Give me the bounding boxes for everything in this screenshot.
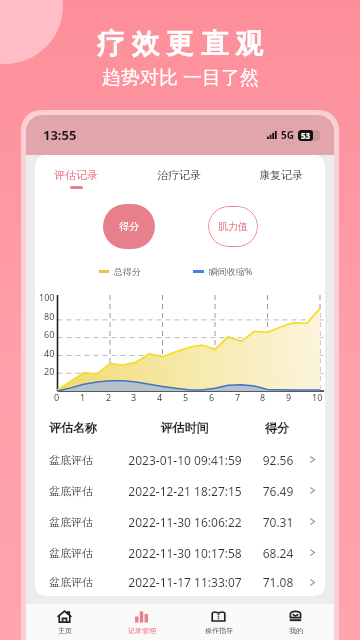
staticText: 2022-11-30 16:06:22 — [122, 514, 248, 530]
button[interactable]: 盆底评估 — [35, 568, 325, 596]
button[interactable]: 主页 — [26, 604, 103, 640]
button[interactable]: 肌力值 — [208, 206, 258, 247]
staticText: 2 — [106, 391, 112, 403]
staticText: 92.56 — [248, 452, 308, 468]
staticText: 盆底评估 — [49, 453, 122, 467]
staticText: 记录管理 — [128, 626, 156, 635]
staticText: 盆底评估 — [49, 484, 122, 498]
staticText: 主页 — [58, 626, 72, 635]
staticText: 5G — [281, 128, 294, 142]
staticText: 盆底评估 — [49, 546, 122, 560]
staticText: 8 — [260, 391, 266, 403]
staticText: 20 — [44, 365, 55, 377]
staticText: 2022-12-21 18:27:15 — [122, 483, 248, 499]
staticText: 治疗记录 — [157, 168, 201, 182]
staticText: 76.49 — [248, 483, 308, 499]
button[interactable]: 记录管理 — [103, 604, 180, 640]
staticText: 操作指导 — [205, 626, 233, 635]
staticText: 盆底评估 — [49, 515, 122, 529]
staticText: 4 — [157, 391, 163, 403]
staticText: 9 — [286, 391, 292, 403]
staticText: 我的 — [289, 626, 303, 635]
button[interactable]: 操作指导 — [180, 604, 257, 640]
staticText: 瞬间收缩% — [209, 265, 253, 277]
staticText: 6 — [209, 391, 215, 403]
staticText: 评估时间 — [122, 420, 247, 435]
button[interactable]: 盆底评估 — [35, 444, 325, 475]
staticText: 评估记录 — [54, 168, 98, 182]
staticText: 疗 效 更 直 观 — [97, 24, 264, 62]
staticText: 5 — [183, 391, 189, 403]
staticText: 2023-01-10 09:41:59 — [122, 452, 248, 468]
staticText: 13:55 — [43, 126, 77, 144]
button[interactable]: 我的 — [257, 604, 334, 640]
staticText: 80 — [44, 310, 55, 322]
button[interactable]: 盆底评估 — [35, 537, 325, 568]
staticText: 肌力值 — [218, 220, 248, 233]
staticText: 总得分 — [114, 266, 141, 277]
staticText: 趋势对比 一目了然 — [102, 64, 259, 90]
staticText: 70.31 — [248, 514, 308, 530]
staticText: 得分 — [119, 220, 139, 233]
staticText: 2022-11-30 10:17:58 — [122, 545, 248, 561]
staticText: 盆底评估 — [49, 575, 122, 589]
staticText: 40 — [44, 347, 55, 359]
button[interactable]: 治疗记录 — [149, 167, 209, 190]
staticText: 得分 — [247, 420, 307, 435]
staticText: 68.24 — [248, 545, 308, 561]
staticText: 60 — [44, 328, 55, 340]
staticText: 评估名称 — [49, 420, 122, 435]
staticText: 53 — [301, 130, 311, 141]
button[interactable]: 评估记录 — [46, 167, 106, 190]
staticText: 1 — [80, 391, 86, 403]
staticText: 3 — [131, 391, 137, 403]
button[interactable]: 盆底评估 — [35, 506, 325, 537]
button[interactable]: 得分 — [103, 204, 155, 249]
staticText: 100 — [39, 291, 55, 303]
button[interactable]: 盆底评估 — [35, 475, 325, 506]
staticText: 7 — [235, 391, 241, 403]
staticText: 10 — [312, 391, 323, 403]
staticText: 0 — [54, 391, 60, 403]
staticText: 71.08 — [248, 574, 308, 590]
staticText: 康复记录 — [259, 168, 303, 182]
staticText: 2022-11-17 11:33:07 — [122, 574, 248, 590]
button[interactable]: 康复记录 — [251, 167, 311, 190]
